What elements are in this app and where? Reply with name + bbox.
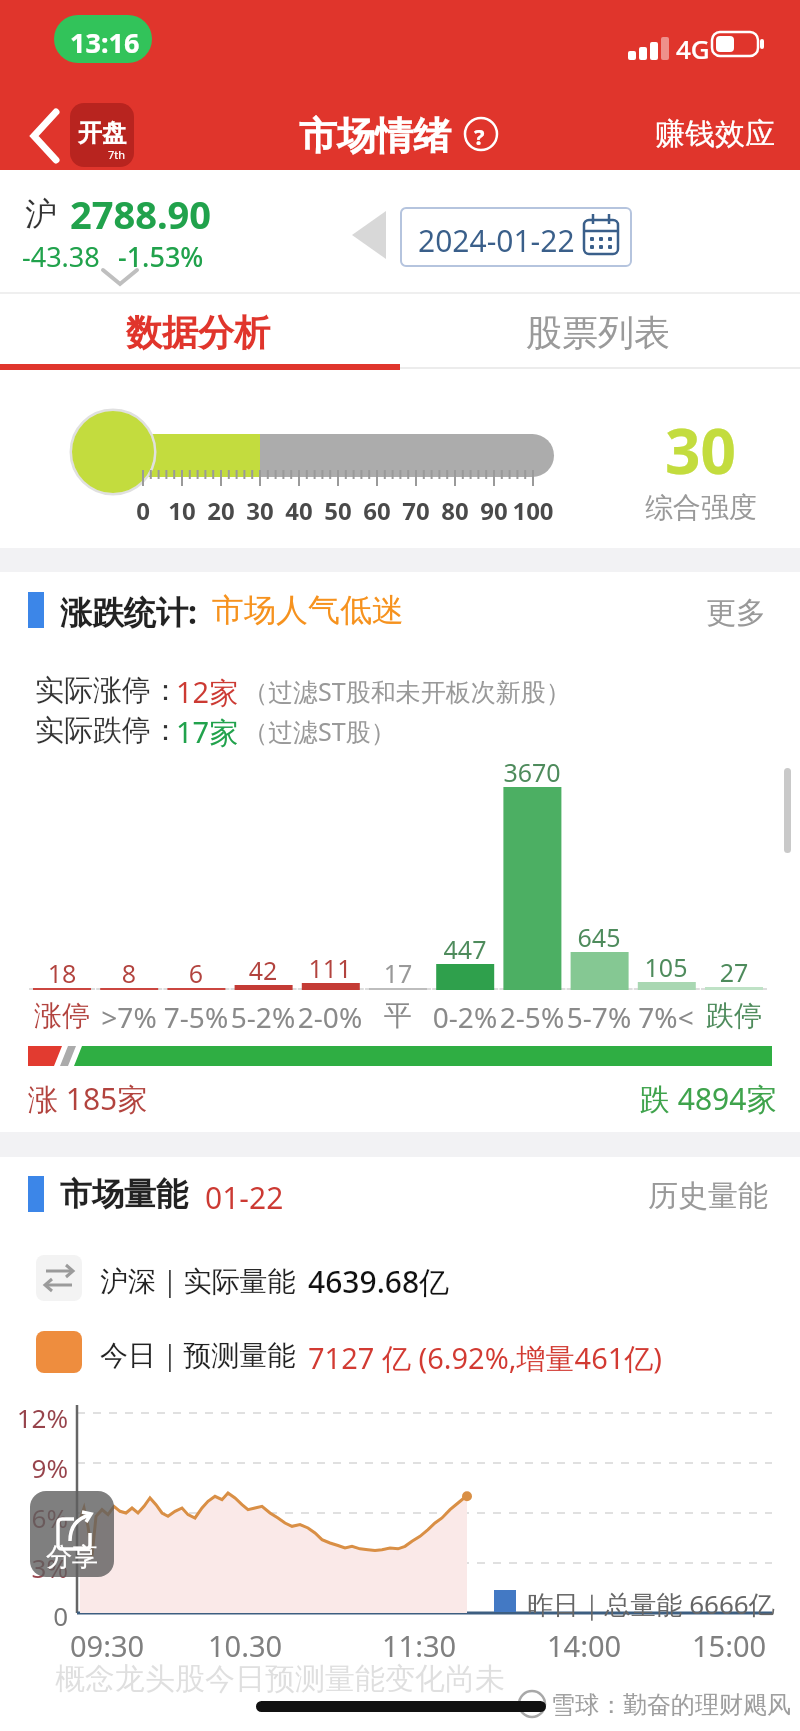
staticText: 2788.90	[70, 188, 212, 240]
staticText: 2024-01-22	[418, 220, 575, 261]
staticText: 50	[313, 494, 363, 527]
staticText: 0-2%	[420, 998, 510, 1036]
staticText: 12%	[14, 1400, 68, 1435]
staticText: 3%	[14, 1550, 68, 1585]
button[interactable]: 赚钱效应	[655, 115, 775, 153]
staticText: 18	[22, 956, 102, 990]
staticText: 30	[665, 408, 736, 492]
staticText: 跌 4894家	[640, 1078, 777, 1119]
staticText: 12家	[176, 672, 239, 712]
staticText: 实际涨停：	[35, 672, 180, 709]
staticText: 60	[352, 494, 402, 527]
staticText: 市场情绪	[299, 112, 451, 160]
staticText: 昨日｜总量能 6666亿	[527, 1586, 775, 1622]
staticText: 15:00	[692, 1626, 767, 1665]
staticText: 历史量能	[648, 1177, 768, 1215]
staticText: 4G	[676, 31, 710, 66]
staticText: 赚钱效应	[655, 115, 775, 153]
staticText: 分享	[46, 1541, 98, 1574]
staticText: 跌停	[689, 998, 779, 1033]
staticText: 14:00	[547, 1626, 622, 1665]
staticText: 涨停	[17, 998, 107, 1033]
staticText: 市场人气低迷	[212, 590, 404, 630]
staticText: 0	[118, 494, 168, 527]
staticText: 概念龙头股今日预测量能变化尚未	[55, 1660, 505, 1698]
staticText: 今日｜预测量能	[100, 1338, 296, 1373]
staticText: 42	[223, 953, 303, 987]
button[interactable]: 分享	[30, 1491, 114, 1577]
staticText: 7th	[108, 147, 126, 162]
staticText: 6%	[14, 1500, 68, 1535]
staticText: 11:30	[382, 1626, 457, 1665]
staticText: 7%<	[621, 998, 711, 1036]
staticText: 09:30	[70, 1626, 145, 1665]
staticText: 开盘	[78, 118, 126, 148]
staticText: 27	[694, 955, 774, 989]
staticText: 40	[274, 494, 324, 527]
staticText: 涨跌统计:	[60, 590, 197, 634]
button[interactable]: 更多	[706, 594, 766, 632]
button[interactable]: 历史量能	[648, 1177, 768, 1215]
staticText: -1.53%	[118, 238, 204, 275]
staticText: 645	[559, 920, 639, 954]
staticText: 100	[508, 494, 558, 527]
staticText: 17家	[176, 712, 239, 752]
button[interactable]: 数据分析	[0, 295, 400, 365]
staticText: 01-22	[205, 1177, 284, 1218]
button[interactable]	[30, 105, 70, 165]
staticText: 雪球：勤奋的理财飓风	[551, 1690, 791, 1720]
staticText: 更多	[706, 594, 766, 632]
staticText: 7-5%	[151, 998, 241, 1036]
staticText: 30	[235, 494, 285, 527]
staticText: 综合强度	[645, 490, 757, 525]
staticText: 数据分析	[126, 310, 270, 355]
staticText: 90	[469, 494, 519, 527]
staticText: 2-0%	[285, 998, 375, 1036]
staticText: 111	[290, 951, 370, 985]
button[interactable]: 开盘	[70, 103, 134, 167]
staticText: -43.38	[22, 238, 100, 275]
staticText: 沪	[25, 194, 57, 234]
staticText: 7127 亿 (6.92%,增量461亿)	[308, 1338, 663, 1378]
staticText: 3670	[492, 755, 572, 789]
staticText: 80	[430, 494, 480, 527]
button[interactable]: 13:16	[54, 15, 152, 63]
staticText: 6	[156, 956, 236, 990]
staticText: 5-7%	[554, 998, 644, 1036]
staticText: 13:16	[70, 24, 140, 61]
staticText: 涨 185家	[28, 1078, 148, 1119]
staticText: 2-5%	[487, 998, 577, 1036]
staticText: 沪深｜实际量能	[100, 1264, 296, 1299]
staticText: 4639.68亿	[308, 1261, 450, 1302]
staticText: ?	[474, 121, 485, 151]
staticText: >7%	[84, 998, 174, 1036]
staticText: 股票列表	[526, 310, 670, 355]
staticText: 5-2%	[218, 998, 308, 1036]
staticText: 10.30	[208, 1626, 283, 1665]
staticText: 17	[358, 956, 438, 990]
staticText: 20	[196, 494, 246, 527]
staticText: 447	[425, 932, 505, 966]
staticText: 70	[391, 494, 441, 527]
staticText: （过滤ST股）	[243, 714, 396, 748]
staticText: 平	[353, 998, 443, 1033]
staticText: 9%	[14, 1450, 68, 1485]
staticText: 10	[157, 494, 207, 527]
staticText: 105	[626, 950, 706, 984]
button[interactable]: 2024-01-22	[400, 207, 632, 267]
staticText: 实际跌停：	[35, 712, 180, 749]
staticText: 市场量能	[60, 1174, 188, 1214]
staticText: 0	[14, 1598, 68, 1633]
staticText: （过滤ST股和未开板次新股）	[243, 674, 571, 708]
button[interactable]: 股票列表	[400, 295, 800, 365]
staticText: 8	[89, 956, 169, 990]
